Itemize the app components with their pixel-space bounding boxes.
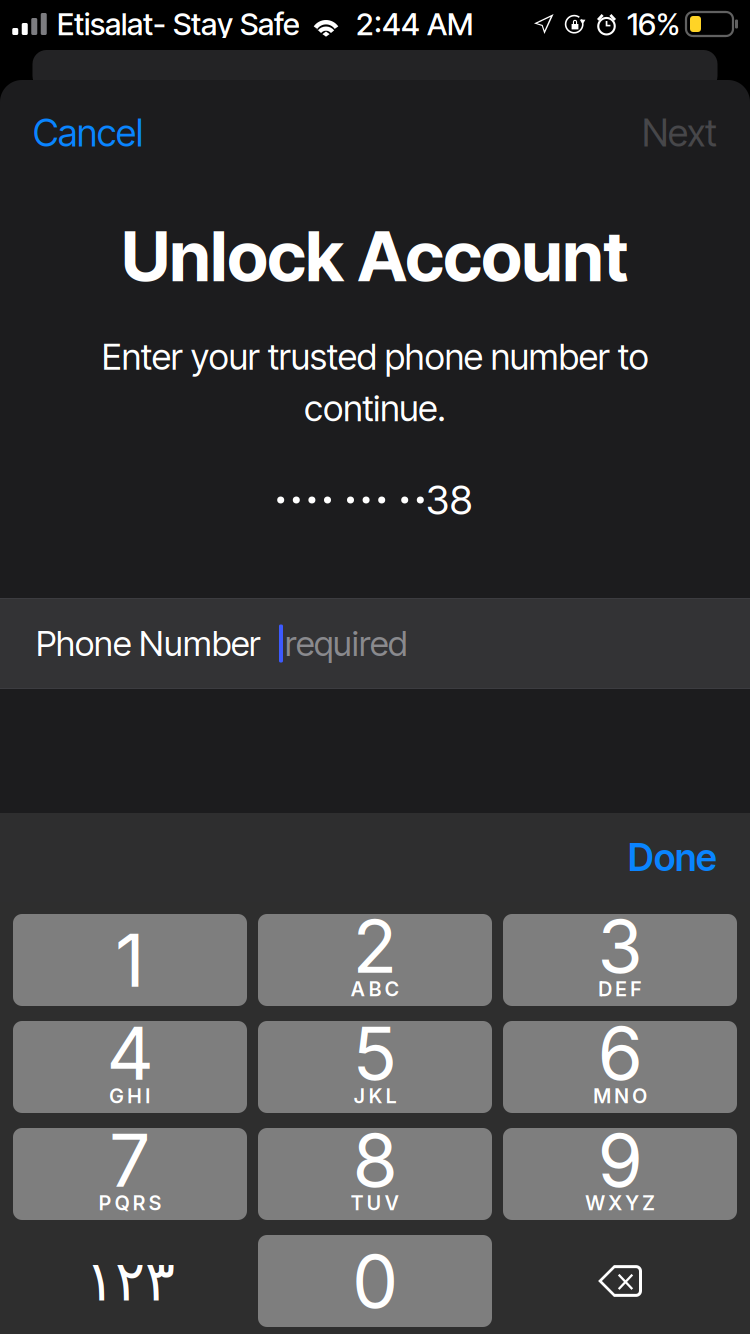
button[interactable]: 1 [13,914,247,1006]
staticText: A B C [350,977,399,1001]
staticText: 8 [352,1116,397,1204]
staticText: D E F [598,977,642,1001]
staticText: 2:44 AM [356,5,473,42]
staticText: ١٢٣ [85,1248,175,1314]
staticText: 4 [106,1009,153,1097]
staticText: 0 [352,1237,398,1325]
staticText: 5 [352,1009,397,1097]
staticText: W X Y Z [585,1191,655,1215]
button[interactable]: 6 [503,1021,737,1113]
button[interactable]: Cancel [0,94,163,172]
staticText: Enter your trusted phone number to conti… [101,335,648,430]
button[interactable]: 4 [13,1021,247,1113]
button[interactable]: Phone Number [0,599,750,688]
staticText: Etisalat- Stay Safe [57,5,300,42]
staticText: J K L [353,1084,396,1108]
button[interactable]: Next [622,94,750,172]
staticText: Next [642,110,717,156]
staticText: Cancel [33,110,143,156]
button[interactable]: ١٢٣ [13,1235,247,1327]
button[interactable]: 8 [258,1128,492,1220]
staticText: 38 [426,476,473,524]
staticText: required [285,622,407,664]
staticText: 16% [627,5,680,42]
staticText: 3 [597,902,642,990]
button[interactable]: 9 [503,1128,737,1220]
button[interactable]: 7 [13,1128,247,1220]
staticText: 2 [352,902,397,990]
staticText: 7 [109,1116,151,1204]
staticText: T U V [350,1191,399,1215]
button[interactable]: 5 [258,1021,492,1113]
button[interactable]: 3 [503,914,737,1006]
staticText: Unlock Account [121,214,628,298]
staticText: Phone Number [36,622,260,664]
staticText: P Q R S [98,1191,161,1215]
staticText: 1 [115,916,145,1004]
staticText: 9 [597,1116,642,1204]
button[interactable]: Done [604,819,750,896]
staticText: G H I [109,1084,151,1108]
button[interactable]: 0 [258,1235,492,1327]
button[interactable]: Delete [503,1235,737,1327]
staticText: Done [628,835,717,880]
button[interactable]: 2 [258,914,492,1006]
staticText: M N O [593,1084,647,1108]
staticText: 6 [597,1009,642,1097]
